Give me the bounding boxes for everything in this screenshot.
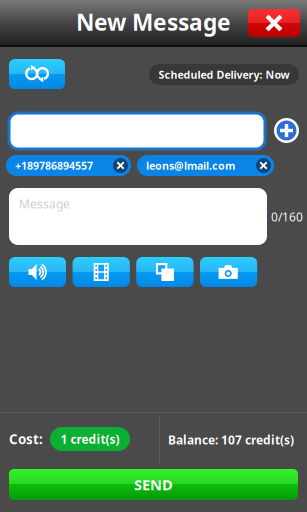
button[interactable]: Video [73,257,130,287]
button[interactable]: Camera [200,257,257,287]
staticText: Cost: [9,430,43,448]
button[interactable]: Scheduled Delivery: Now [149,64,299,85]
staticText: SEND [134,475,173,494]
staticText: Balance: 107 credit(s) [168,432,294,448]
button[interactable]: Photos [136,257,193,287]
button[interactable]: Sound [9,257,66,287]
button[interactable]: +189786894557 [6,155,131,176]
button[interactable]: Add recipient [274,118,299,143]
staticText: Message [19,196,70,212]
button[interactable]: SEND [9,469,298,500]
staticText: Scheduled Delivery: Now [158,67,289,82]
staticText: New Message [76,7,231,37]
staticText: leons@lmail.com [146,158,235,173]
button[interactable]: Repeat [9,59,65,89]
button[interactable]: leons@lmail.com [137,155,274,176]
staticText: 1 credit(s) [60,431,119,447]
staticText: 0/160 [271,209,303,225]
staticText: +189786894557 [15,158,93,173]
button[interactable]: Close [248,9,300,37]
